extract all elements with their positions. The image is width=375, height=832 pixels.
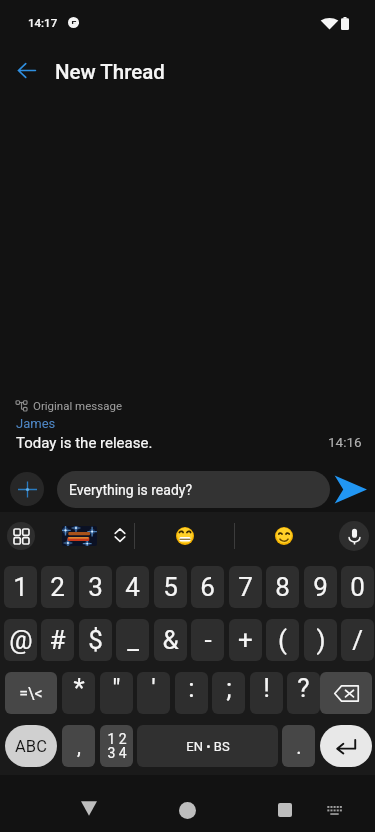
button[interactable]: Smiling emoji xyxy=(275,527,293,545)
button[interactable]: 7 xyxy=(229,566,262,608)
staticText: 5 xyxy=(163,572,178,602)
button[interactable]: Expand suggestions xyxy=(112,527,128,543)
staticText: _ xyxy=(127,625,139,655)
button[interactable]: 1 xyxy=(4,566,37,608)
button[interactable]: / xyxy=(341,619,374,661)
staticText: 2 xyxy=(50,572,65,602)
button[interactable]: # xyxy=(41,619,74,661)
button[interactable]: : xyxy=(175,672,208,714)
button[interactable]: EN • BS xyxy=(137,725,278,767)
staticText: ! xyxy=(263,673,270,703)
staticText: * xyxy=(73,673,85,703)
staticText: 3 xyxy=(88,572,103,602)
staticText: 7 xyxy=(238,572,253,602)
staticText: 6 xyxy=(200,572,215,602)
staticText: $ xyxy=(88,625,103,655)
button[interactable]: Recent apps xyxy=(266,791,304,829)
button[interactable]: 9 xyxy=(304,566,337,608)
button[interactable]: Back xyxy=(9,53,43,87)
button[interactable]: Sticker suggestion xyxy=(62,526,97,546)
button[interactable]: Add attachment xyxy=(10,472,44,506)
staticText: @ xyxy=(9,625,33,655)
button[interactable]: . xyxy=(282,725,315,767)
button[interactable]: ! xyxy=(250,672,283,714)
button[interactable]: " xyxy=(100,672,133,714)
button[interactable]: Grinning emoji xyxy=(176,527,194,545)
button[interactable]: _ xyxy=(116,619,149,661)
button[interactable]: 1 2 3 4 xyxy=(100,725,133,767)
staticText: 9 xyxy=(313,572,328,602)
button[interactable]: Everything is ready? xyxy=(57,471,330,508)
staticText: Today is the release. xyxy=(16,434,153,452)
button[interactable]: $ xyxy=(79,619,112,661)
button[interactable]: Voice input xyxy=(339,521,369,551)
staticText: / xyxy=(352,625,363,655)
button[interactable]: ' xyxy=(137,672,170,714)
staticText: : xyxy=(188,673,195,703)
button[interactable]: 2 xyxy=(41,566,74,608)
button[interactable]: , xyxy=(62,725,95,767)
staticText: # xyxy=(49,625,66,655)
staticText: 8 xyxy=(275,572,290,602)
button[interactable]: Keyboard toolbar xyxy=(7,522,35,550)
staticText: , xyxy=(77,735,81,758)
staticText: - xyxy=(204,625,212,655)
button[interactable]: 8 xyxy=(266,566,299,608)
button[interactable]: ? xyxy=(287,672,320,714)
button[interactable]: =\< xyxy=(5,672,57,714)
staticText: ABC xyxy=(15,737,47,756)
button[interactable]: Backspace xyxy=(320,672,372,714)
button[interactable]: 4 xyxy=(116,566,149,608)
button[interactable]: 6 xyxy=(191,566,224,608)
staticText: James xyxy=(16,416,56,431)
button[interactable]: Back xyxy=(70,789,108,827)
button[interactable]: Switch keyboard xyxy=(315,791,353,829)
staticText: " xyxy=(112,673,121,703)
button[interactable]: Home xyxy=(168,791,206,829)
button[interactable]: ) xyxy=(304,619,337,661)
staticText: EN • BS xyxy=(186,739,230,754)
staticText: ' xyxy=(151,673,156,703)
button[interactable]: @ xyxy=(4,619,37,661)
button[interactable]: - xyxy=(191,619,224,661)
button[interactable]: Enter xyxy=(320,725,372,767)
staticText: ; xyxy=(226,673,232,703)
button[interactable]: 0 xyxy=(341,566,374,608)
staticText: & xyxy=(162,625,179,655)
staticText: 1 xyxy=(13,572,28,602)
button[interactable]: 3 xyxy=(79,566,112,608)
button[interactable]: + xyxy=(229,619,262,661)
button[interactable]: ; xyxy=(212,672,245,714)
staticText: ( xyxy=(278,625,287,655)
staticText: . xyxy=(296,735,302,758)
button[interactable]: * xyxy=(62,672,95,714)
staticText: + xyxy=(238,625,253,655)
staticText: 14:16 xyxy=(328,434,362,450)
button[interactable]: ABC xyxy=(5,725,57,767)
staticText: =\< xyxy=(19,684,43,703)
button[interactable]: ( xyxy=(266,619,299,661)
staticText: 0 xyxy=(350,572,365,602)
staticText: ? xyxy=(297,673,310,703)
staticText: 14:17 xyxy=(28,16,58,29)
staticText: 4 xyxy=(125,572,140,602)
staticText: New Thread xyxy=(55,60,165,84)
staticText: 1 2 3 4 xyxy=(107,731,127,761)
staticText: Original message xyxy=(33,399,122,412)
staticText: Everything is ready? xyxy=(69,482,193,498)
button[interactable]: 5 xyxy=(154,566,187,608)
button[interactable]: & xyxy=(154,619,187,661)
button[interactable]: Send xyxy=(332,471,368,507)
staticText: ) xyxy=(316,625,326,655)
